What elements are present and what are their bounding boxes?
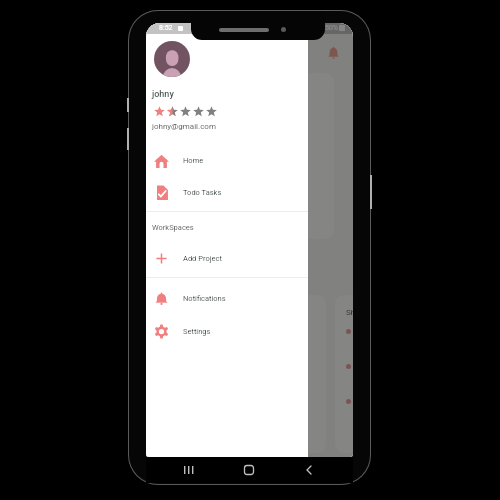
staticText: Add Project — [183, 254, 222, 263]
staticText: WorkSpaces — [152, 223, 194, 232]
staticText: Settings — [183, 327, 211, 336]
staticText: Hello — [177, 327, 194, 335]
staticText: johny — [152, 89, 174, 100]
staticText: Shopping — [346, 308, 353, 317]
button[interactable]: Notifications — [146, 282, 308, 314]
staticText: 8:52 — [159, 24, 173, 32]
staticText: Todo Tasks — [183, 188, 222, 197]
staticText: johny@gmail.com — [152, 122, 216, 131]
button[interactable]: Todo Tasks — [146, 176, 308, 208]
staticText: Home — [183, 156, 204, 165]
button[interactable]: Notifications — [327, 45, 340, 60]
button[interactable]: Settings — [146, 315, 308, 347]
staticText: Notifications — [183, 294, 226, 303]
button[interactable]: Recents — [182, 464, 194, 476]
button[interactable]: Back — [303, 464, 315, 476]
staticText: 50% — [325, 24, 338, 32]
button[interactable]: Home — [146, 144, 308, 176]
button[interactable]: Home — [243, 464, 255, 476]
button[interactable]: Add Project — [146, 242, 308, 274]
